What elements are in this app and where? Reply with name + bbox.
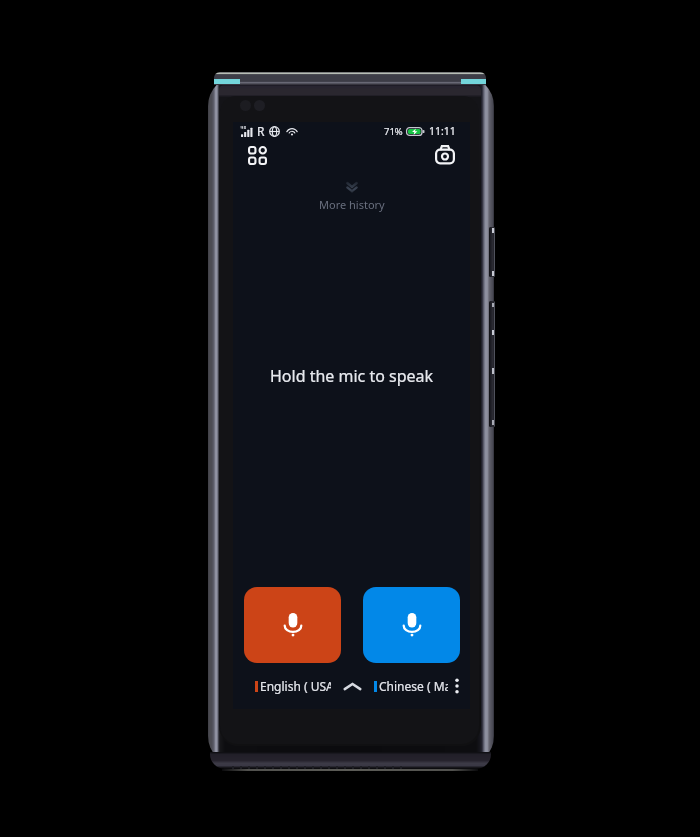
staticText: 71% [384,125,403,138]
other: Side button [489,301,495,427]
staticText: English ( USA ) [260,678,331,694]
button[interactable]: More history [233,181,470,212]
button[interactable]: Chinese microphone [363,587,460,663]
button[interactable]: Expand languages [331,676,374,696]
button[interactable]: Apps [246,144,268,166]
button[interactable]: English microphone [244,587,341,663]
button[interactable]: More options [451,676,463,696]
staticText: Hold the mic to speak [270,365,434,387]
other: Side button [489,227,495,277]
staticText: 11:11 [429,124,456,138]
staticText: Chinese ( Mandarin ) [379,678,448,694]
button[interactable]: Camera [434,144,456,166]
staticText: More history [319,197,385,212]
button[interactable]: Chinese ( Mandarin ) [374,678,448,694]
staticText: R [257,123,265,139]
button[interactable]: English ( USA ) [255,678,331,694]
